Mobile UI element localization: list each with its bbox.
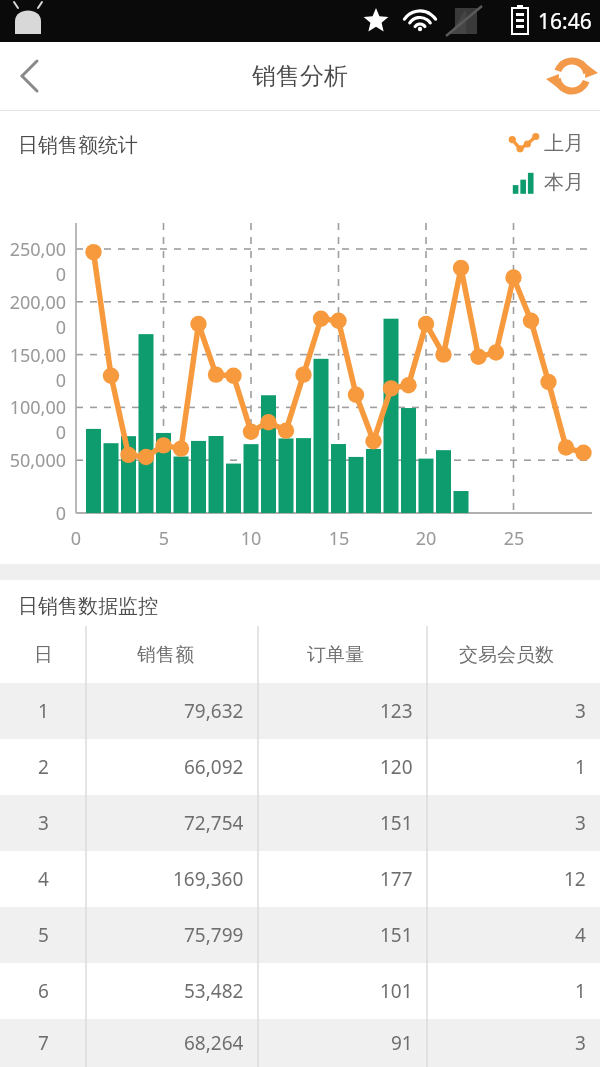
staticText: 25 xyxy=(494,526,534,551)
staticText: 151 xyxy=(380,810,413,836)
staticText: 101 xyxy=(380,978,413,1004)
staticText: 150,000 xyxy=(0,343,66,393)
staticText: 5 xyxy=(38,922,49,948)
staticText: 79,632 xyxy=(184,698,244,724)
staticText: 169,360 xyxy=(173,866,244,892)
staticText: 123 xyxy=(380,698,413,724)
staticText: 151 xyxy=(380,922,413,948)
staticText: 交易会员数 xyxy=(459,643,554,667)
staticText: 上月 xyxy=(544,131,584,156)
staticText: 20 xyxy=(406,526,446,551)
staticText: 7 xyxy=(38,1030,49,1056)
staticText: 订单量 xyxy=(307,643,364,667)
staticText: 1 xyxy=(575,754,586,780)
staticText: 15 xyxy=(319,526,359,551)
staticText: 75,799 xyxy=(184,922,244,948)
staticText: 100,000 xyxy=(0,395,66,445)
button[interactable]: 上月 xyxy=(510,131,584,156)
staticText: 66,092 xyxy=(184,754,244,780)
button[interactable]: 5 xyxy=(0,907,600,963)
button[interactable]: 3 xyxy=(0,795,600,851)
staticText: 3 xyxy=(575,810,586,836)
button[interactable]: 1 xyxy=(0,683,600,739)
button[interactable]: 日 xyxy=(0,627,600,683)
staticText: 销售分析 xyxy=(252,61,348,91)
staticText: 72,754 xyxy=(184,810,244,836)
staticText: 1 xyxy=(575,978,586,1004)
staticText: 3 xyxy=(38,810,49,836)
staticText: 10 xyxy=(231,526,271,551)
staticText: 1 xyxy=(38,698,49,724)
staticText: 本月 xyxy=(544,170,584,195)
button[interactable]: Refresh xyxy=(536,44,600,108)
staticText: 2 xyxy=(38,754,49,780)
staticText: 120 xyxy=(380,754,413,780)
button[interactable]: 4 xyxy=(0,851,600,907)
staticText: 3 xyxy=(575,1030,586,1056)
staticText: 6 xyxy=(38,978,49,1004)
staticText: 4 xyxy=(38,866,49,892)
button[interactable]: 7 xyxy=(0,1019,600,1067)
staticText: 177 xyxy=(380,866,413,892)
staticText: 68,264 xyxy=(184,1030,244,1056)
staticText: 日销售数据监控 xyxy=(18,594,158,619)
staticText: 12 xyxy=(564,866,586,892)
button[interactable]: 本月 xyxy=(510,170,584,195)
staticText: 日销售额统计 xyxy=(18,133,138,158)
staticText: 日 xyxy=(34,643,53,667)
staticText: 0 xyxy=(0,501,66,526)
staticText: 91 xyxy=(391,1030,413,1056)
staticText: 200,000 xyxy=(0,290,66,340)
staticText: 0 xyxy=(56,526,96,551)
button[interactable]: 2 xyxy=(0,739,600,795)
button[interactable]: 6 xyxy=(0,963,600,1019)
staticText: 250,000 xyxy=(0,237,66,287)
staticText: 销售额 xyxy=(137,643,194,667)
staticText: 5 xyxy=(144,526,184,551)
staticText: 16:46 xyxy=(538,7,592,36)
staticText: 53,482 xyxy=(184,978,244,1004)
staticText: 4 xyxy=(575,922,586,948)
button[interactable]: Back xyxy=(0,44,64,108)
staticText: 3 xyxy=(575,698,586,724)
staticText: 50,000 xyxy=(0,448,66,473)
